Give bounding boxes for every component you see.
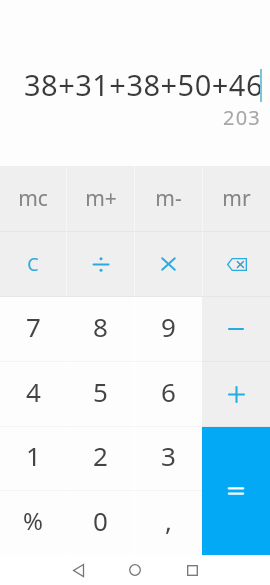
button[interactable]: Equals [202, 427, 270, 555]
button[interactable]: C [0, 232, 66, 296]
staticText: 3 [161, 438, 176, 473]
staticText: 1 [26, 438, 41, 473]
button[interactable]: Multiply [135, 232, 202, 296]
button[interactable]: 4 [0, 362, 66, 426]
button[interactable]: Back [63, 555, 93, 585]
button[interactable]: 6 [135, 362, 202, 426]
button[interactable]: 9 [135, 297, 202, 361]
staticText: C [27, 252, 39, 277]
button[interactable]: Home [120, 555, 150, 585]
button[interactable]: m- [135, 166, 202, 231]
staticText: % [23, 504, 43, 537]
button[interactable]: Backspace [203, 232, 270, 296]
staticText: 5 [93, 374, 108, 409]
button[interactable]: mr [203, 166, 270, 231]
button[interactable]: Divide [67, 232, 134, 296]
button[interactable]: 0 [67, 491, 134, 555]
button[interactable]: m+ [67, 166, 134, 231]
staticText: 203 [223, 104, 261, 131]
button[interactable]: Minus [202, 297, 270, 361]
button[interactable]: 3 [135, 427, 202, 490]
button[interactable]: 1 [0, 427, 66, 490]
button[interactable]: 2 [67, 427, 134, 490]
staticText: 2 [93, 438, 108, 473]
staticText: m+ [85, 184, 117, 213]
button[interactable]: 7 [0, 297, 66, 361]
staticText: mr [222, 184, 251, 213]
staticText: , [165, 503, 172, 538]
staticText: 38+31+38+50+46 [24, 65, 263, 104]
button[interactable]: Recents [177, 555, 207, 585]
button[interactable]: mc [0, 166, 66, 231]
staticText: m- [155, 184, 182, 213]
staticText: 6 [161, 374, 176, 409]
staticText: 4 [26, 374, 41, 409]
button[interactable]: % [0, 491, 66, 555]
button[interactable]: , [135, 491, 202, 555]
staticText: 9 [161, 309, 176, 344]
staticText: 8 [93, 309, 108, 344]
staticText: 0 [93, 503, 108, 538]
staticText: 7 [26, 309, 41, 344]
button[interactable]: 5 [67, 362, 134, 426]
staticText: mc [18, 184, 48, 213]
button[interactable]: Plus [202, 362, 270, 426]
button[interactable]: 8 [67, 297, 134, 361]
